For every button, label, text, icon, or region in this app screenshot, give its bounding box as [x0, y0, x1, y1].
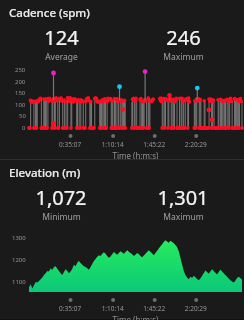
staticText: Average	[45, 51, 78, 63]
button[interactable]: Cadence (spm)	[0, 0, 244, 159]
other: Cadence chart	[0, 67, 244, 159]
button[interactable]: Elevation (m)	[0, 160, 244, 319]
staticText: Minimum	[42, 211, 81, 223]
staticText: 1,072	[35, 184, 87, 211]
staticText: 246	[166, 24, 201, 51]
staticText: 124	[44, 24, 79, 51]
staticText: 1,301	[157, 184, 209, 211]
staticText: Maximum	[163, 51, 204, 63]
staticText: Maximum	[163, 211, 204, 223]
other: Elevation chart	[0, 227, 244, 319]
staticText: Elevation (m)	[9, 165, 81, 181]
staticText: Cadence (spm)	[9, 5, 90, 21]
